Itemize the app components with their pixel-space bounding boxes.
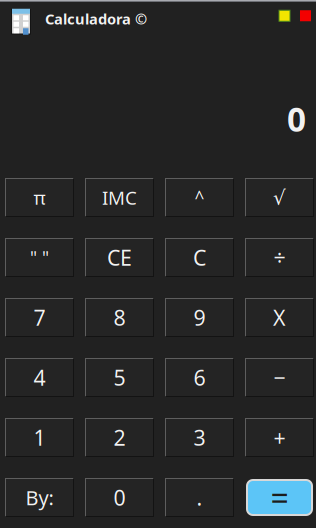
button[interactable]: √ xyxy=(245,178,314,217)
staticText: √ xyxy=(273,186,286,209)
button[interactable]: 6 xyxy=(165,358,234,397)
staticText: 7 xyxy=(33,303,45,332)
staticText: 3 xyxy=(193,423,205,452)
button[interactable]: Minimise window xyxy=(279,10,290,26)
staticText: Calculadora © xyxy=(45,9,147,28)
button[interactable]: + xyxy=(245,418,314,457)
staticText: 0 xyxy=(113,483,125,512)
button[interactable]: 7 xyxy=(5,298,74,337)
button[interactable]: = xyxy=(245,478,314,517)
button[interactable]: 5 xyxy=(85,358,154,397)
button[interactable]: . xyxy=(165,478,234,517)
staticText: CE xyxy=(107,243,132,272)
staticText: − xyxy=(273,363,285,392)
staticText: + xyxy=(273,423,285,452)
staticText: C xyxy=(193,243,206,272)
button[interactable]: 2 xyxy=(85,418,154,457)
button[interactable]: 4 xyxy=(5,358,74,397)
button[interactable]: ÷ xyxy=(245,238,314,277)
staticText: = xyxy=(270,476,288,511)
button[interactable]: π xyxy=(5,178,74,217)
button[interactable]: " " xyxy=(5,238,74,277)
staticText: . xyxy=(196,483,202,512)
staticText: 6 xyxy=(193,363,205,392)
button[interactable]: 3 xyxy=(165,418,234,457)
button[interactable]: 9 xyxy=(165,298,234,337)
button[interactable]: IMC xyxy=(85,178,154,217)
button[interactable]: By: xyxy=(5,478,74,517)
button[interactable]: X xyxy=(245,298,314,337)
button[interactable]: 1 xyxy=(5,418,74,457)
staticText: 2 xyxy=(113,423,125,452)
button[interactable]: ^ xyxy=(165,178,234,217)
staticText: IMC xyxy=(102,185,137,210)
staticText: 9 xyxy=(193,303,205,332)
staticText: π xyxy=(33,185,45,210)
staticText: 8 xyxy=(113,303,125,332)
button[interactable]: CE xyxy=(85,238,154,277)
staticText: " " xyxy=(30,246,49,269)
staticText: 0 xyxy=(287,97,306,141)
staticText: ÷ xyxy=(273,243,285,272)
button[interactable]: 0 xyxy=(85,478,154,517)
staticText: X xyxy=(273,303,286,332)
staticText: ^ xyxy=(194,186,204,209)
staticText: 5 xyxy=(113,363,125,392)
staticText: 4 xyxy=(33,363,45,392)
staticText: By: xyxy=(25,484,53,511)
button[interactable]: C xyxy=(165,238,234,277)
button[interactable]: − xyxy=(245,358,314,397)
staticText: 1 xyxy=(33,423,45,452)
button[interactable]: 8 xyxy=(85,298,154,337)
button[interactable]: Close window xyxy=(290,10,316,26)
